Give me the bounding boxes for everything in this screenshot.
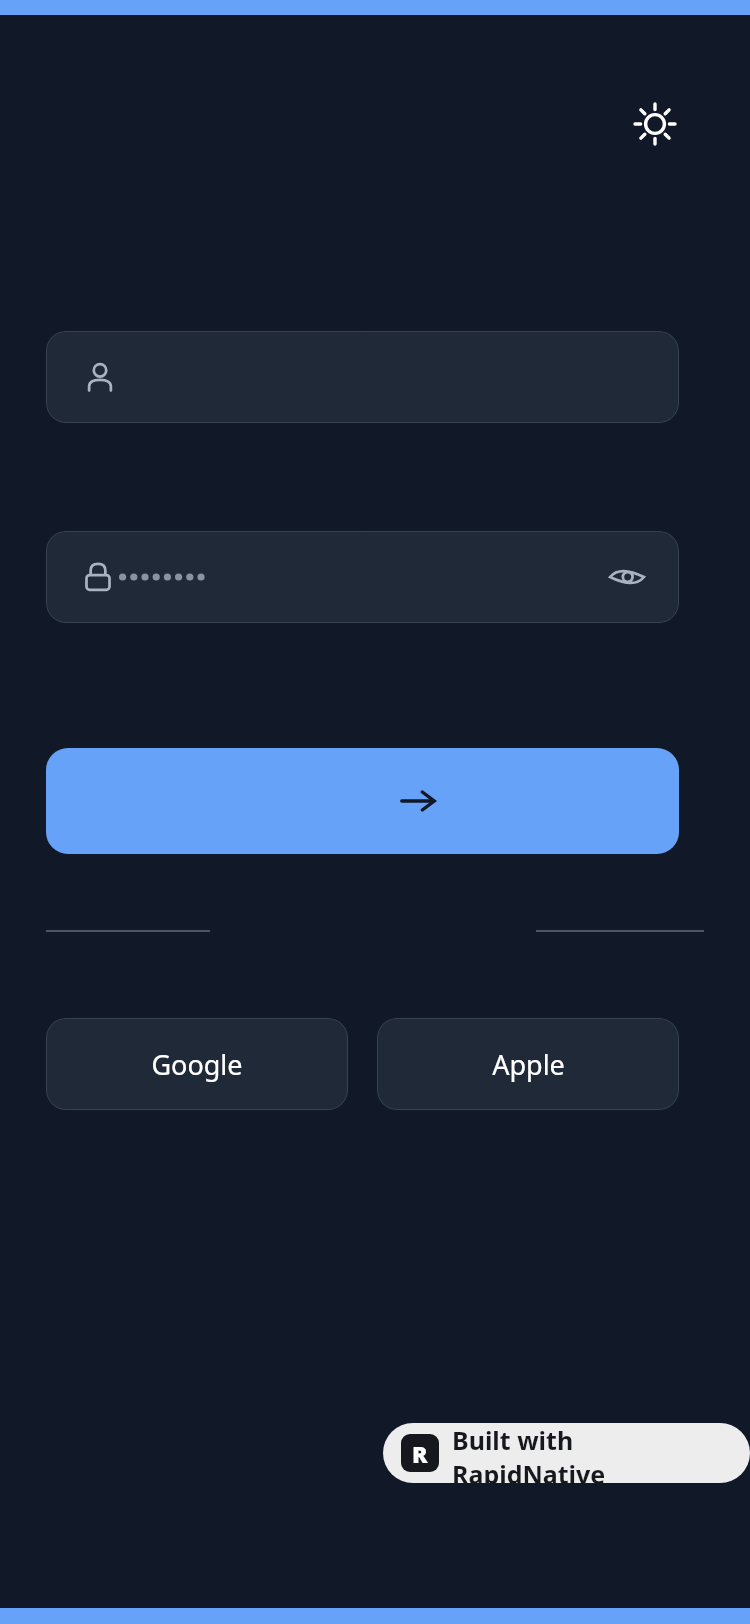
button[interactable]: Apple (377, 1018, 679, 1110)
button[interactable]: Toggle theme (624, 93, 686, 155)
staticText: Built with RapidNative (452, 1423, 732, 1483)
staticText: R (412, 1438, 428, 1469)
button[interactable]: Google (46, 1018, 348, 1110)
button[interactable]: Sign in (46, 748, 679, 854)
staticText: Apple (492, 1046, 565, 1083)
button[interactable]: Show password (46, 531, 679, 623)
button[interactable] (46, 331, 679, 423)
button[interactable]: R (383, 1423, 750, 1483)
button[interactable]: Show password (599, 549, 655, 605)
staticText: Google (151, 1046, 243, 1083)
